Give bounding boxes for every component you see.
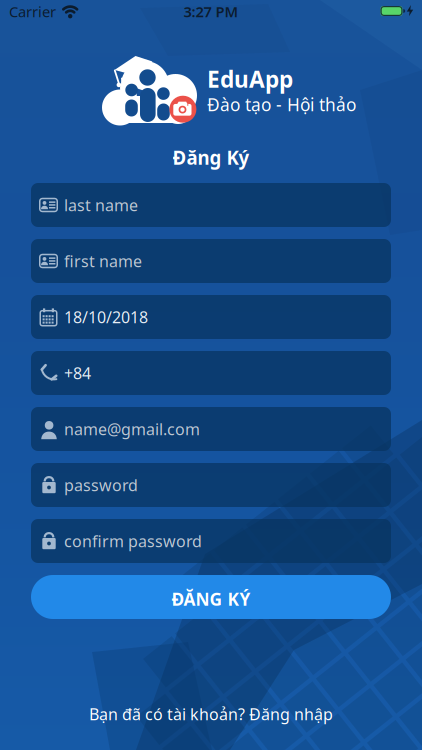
button[interactable]: last name xyxy=(31,183,391,227)
staticText: Đăng Ký xyxy=(172,145,249,170)
button[interactable]: ĐĂNG KÝ xyxy=(31,575,391,619)
staticText: 18/10/2018 xyxy=(64,306,148,328)
button[interactable]: password xyxy=(31,463,391,507)
button[interactable]: Bạn đã có tài khoản? Đăng nhập xyxy=(89,703,333,725)
staticText: Đào tạo - Hội thảo xyxy=(207,93,356,116)
button[interactable]: +84 xyxy=(31,351,391,395)
staticText: Carrier xyxy=(9,2,56,21)
button[interactable]: name@gmail.com xyxy=(31,407,391,451)
button[interactable]: first name xyxy=(31,239,391,283)
staticText: Bạn đã có tài khoản? Đăng nhập xyxy=(89,703,333,725)
button[interactable]: confirm password xyxy=(31,519,391,563)
staticText: confirm password xyxy=(64,530,202,552)
staticText: EduApp xyxy=(207,64,293,94)
staticText: +84 xyxy=(64,362,91,384)
button[interactable]: 18/10/2018 xyxy=(31,295,391,339)
staticText: ĐĂNG KÝ xyxy=(171,587,250,610)
staticText: first name xyxy=(64,250,142,272)
staticText: 3:27 PM xyxy=(183,2,238,21)
staticText: password xyxy=(64,474,138,496)
staticText: last name xyxy=(64,194,138,216)
staticText: name@gmail.com xyxy=(64,418,200,440)
